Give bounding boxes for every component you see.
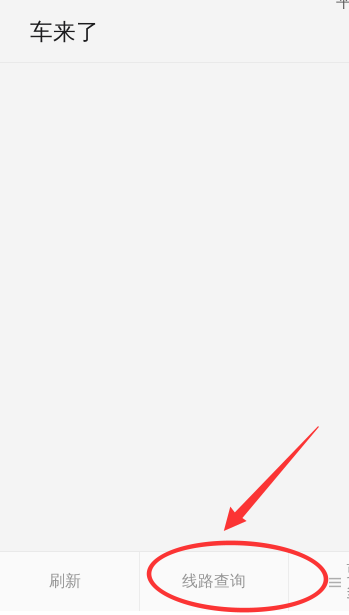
staticText: 车来了	[30, 18, 99, 46]
button[interactable]: 刷新	[0, 551, 139, 611]
staticText: 平	[336, 0, 349, 12]
staticText: 线路查询	[182, 571, 246, 591]
staticText: 更多	[346, 561, 349, 601]
button[interactable]: 线路查询	[140, 551, 288, 611]
button[interactable]: More	[289, 551, 349, 611]
staticText: 刷新	[49, 571, 81, 591]
